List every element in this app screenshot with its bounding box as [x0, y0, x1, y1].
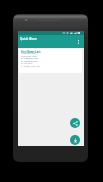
staticText: First Name Last	[21, 50, 41, 53]
button[interactable]: Share	[70, 118, 80, 128]
button[interactable]: First Name Last	[19, 49, 82, 73]
staticText: A: Street, City Nm	[21, 65, 40, 68]
staticText: M: 9876543210	[21, 60, 38, 63]
staticText: E: mail@tst.com	[21, 57, 39, 60]
button[interactable]: Add to contacts	[70, 135, 80, 145]
staticText: W: tst.com	[21, 62, 33, 65]
button[interactable]: More options	[75, 37, 82, 47]
staticText: Company Nm	[21, 52, 36, 55]
staticText: Company Addr	[21, 55, 38, 58]
staticText: Quick Share	[20, 37, 37, 41]
